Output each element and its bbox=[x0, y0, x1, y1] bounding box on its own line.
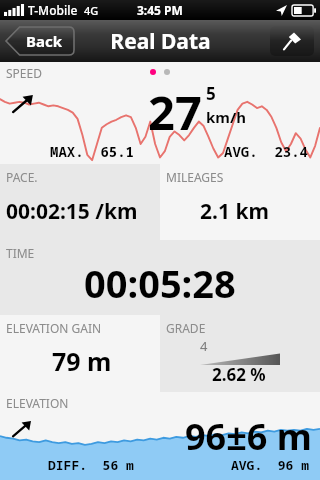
staticText: 2.1 km bbox=[200, 197, 269, 226]
staticText: ELEVATION GAIN bbox=[6, 320, 102, 336]
button[interactable]: Back bbox=[6, 27, 74, 55]
staticText: MAX. 65.1 bbox=[50, 142, 134, 161]
staticText: Real Data bbox=[110, 27, 211, 56]
staticText: GRADE bbox=[166, 320, 206, 336]
button[interactable]: ELEVATION GAIN bbox=[0, 315, 160, 392]
staticText: DIFF. 56 m bbox=[48, 456, 134, 474]
staticText: T-Mobile bbox=[28, 2, 78, 18]
button[interactable]: PACE. bbox=[0, 164, 160, 240]
staticText: Back bbox=[26, 31, 63, 51]
staticText: MILEAGES bbox=[166, 169, 224, 185]
staticText: 4 bbox=[200, 337, 208, 355]
staticText: AVG. 23.4 bbox=[224, 142, 308, 161]
staticText: AVG. 96 m bbox=[231, 456, 310, 474]
button[interactable]: Pin bbox=[270, 26, 314, 56]
staticText: 00:02:15 /km bbox=[6, 197, 138, 226]
staticText: ELEVATION bbox=[6, 395, 69, 411]
staticText: SPEED bbox=[6, 65, 42, 81]
button[interactable]: GRADE bbox=[160, 315, 320, 392]
staticText: 96±6 m bbox=[185, 412, 312, 461]
staticText: 5 bbox=[206, 82, 216, 105]
button[interactable]: TIME bbox=[0, 240, 320, 315]
staticText: 27 bbox=[148, 80, 202, 144]
staticText: 2.62 % bbox=[212, 363, 266, 386]
button[interactable]: MILEAGES bbox=[160, 164, 320, 240]
staticText: 4G bbox=[84, 3, 99, 18]
staticText: km/h bbox=[206, 107, 246, 127]
staticText: PACE. bbox=[6, 169, 38, 185]
staticText: 3:45 PM bbox=[137, 2, 183, 18]
staticText: 00:05:28 bbox=[84, 257, 236, 309]
staticText: 79 m bbox=[52, 344, 112, 378]
staticText: TIME bbox=[6, 245, 35, 261]
